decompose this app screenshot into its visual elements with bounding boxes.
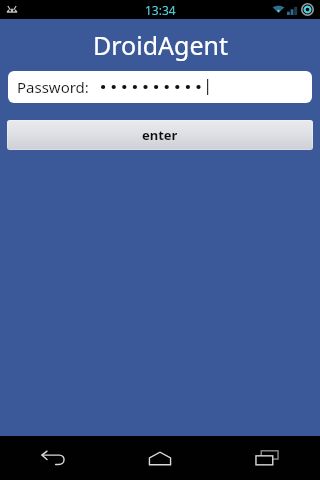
button[interactable]: Home (106, 436, 213, 480)
button[interactable]: Password: (8, 71, 312, 103)
staticText: enter (142, 126, 178, 144)
staticText: 13:34 (145, 2, 176, 18)
staticText: Password: (17, 77, 89, 97)
button[interactable]: Recent apps (213, 436, 320, 480)
staticText: DroidAgent (93, 28, 228, 62)
button[interactable]: Back (0, 436, 106, 480)
button[interactable]: enter (7, 120, 313, 150)
